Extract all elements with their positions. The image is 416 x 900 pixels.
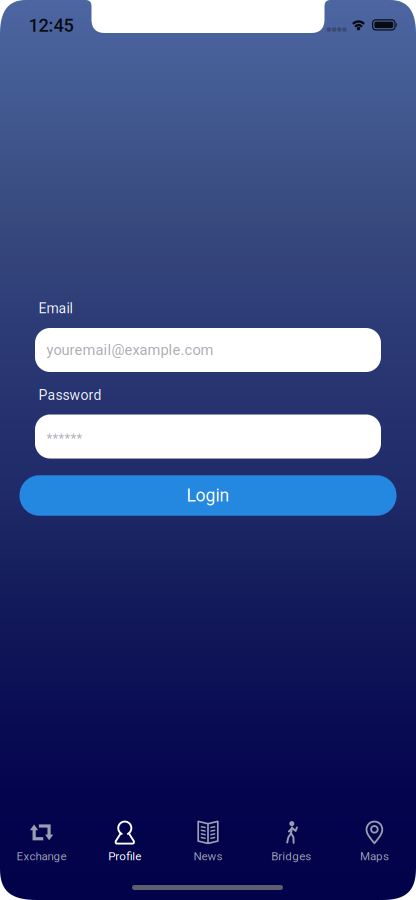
button[interactable]: Exchange	[0, 822, 83, 865]
button[interactable]: Bridges	[250, 822, 333, 865]
staticText: Bridges	[271, 849, 311, 863]
staticText: youremail@example.com	[46, 341, 213, 358]
staticText: Profile	[108, 849, 141, 863]
staticText: Password	[38, 387, 101, 403]
button[interactable]: Maps	[333, 822, 416, 865]
button[interactable]: ******	[35, 414, 381, 458]
staticText: Exchange	[17, 849, 67, 863]
staticText: News	[193, 849, 222, 863]
button[interactable]: Profile	[83, 822, 166, 865]
staticText: 12:45	[28, 15, 73, 36]
staticText: Email	[38, 300, 72, 317]
staticText: Maps	[360, 849, 389, 863]
button[interactable]: Login	[19, 475, 396, 516]
staticText: Login	[186, 485, 229, 506]
staticText: ******	[46, 430, 82, 446]
button[interactable]: youremail@example.com	[35, 328, 381, 372]
button[interactable]: News	[166, 822, 250, 865]
